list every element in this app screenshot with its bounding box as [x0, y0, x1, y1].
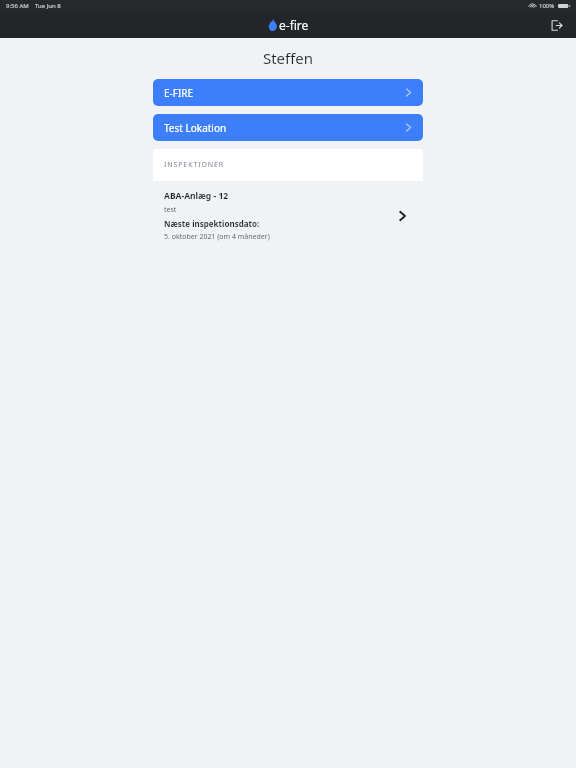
button[interactable]: ABA-Anlæg - 12 — [153, 181, 423, 253]
staticText: E-FIRE — [164, 86, 405, 100]
other: Open inspection — [392, 206, 412, 226]
staticText: 5. oktober 2021 (om 4 måneder) — [164, 232, 270, 242]
staticText: Tue Jun 8 — [35, 2, 61, 10]
staticText: 100% — [539, 2, 555, 10]
staticText: Test Lokation — [164, 121, 405, 135]
staticText: Næste inspektionsdato: — [164, 218, 260, 229]
staticText: ABA-Anlæg - 12 — [164, 190, 229, 202]
staticText: test — [164, 205, 177, 215]
button[interactable]: Log out — [546, 15, 566, 35]
staticText: Steffen — [0, 48, 576, 68]
staticText: INSPEKTIONER — [164, 160, 225, 170]
staticText: e-fire — [279, 17, 309, 33]
button[interactable]: E-FIRE — [153, 79, 423, 106]
staticText: 9:56 AM — [6, 2, 29, 10]
button[interactable]: Test Lokation — [153, 114, 423, 141]
